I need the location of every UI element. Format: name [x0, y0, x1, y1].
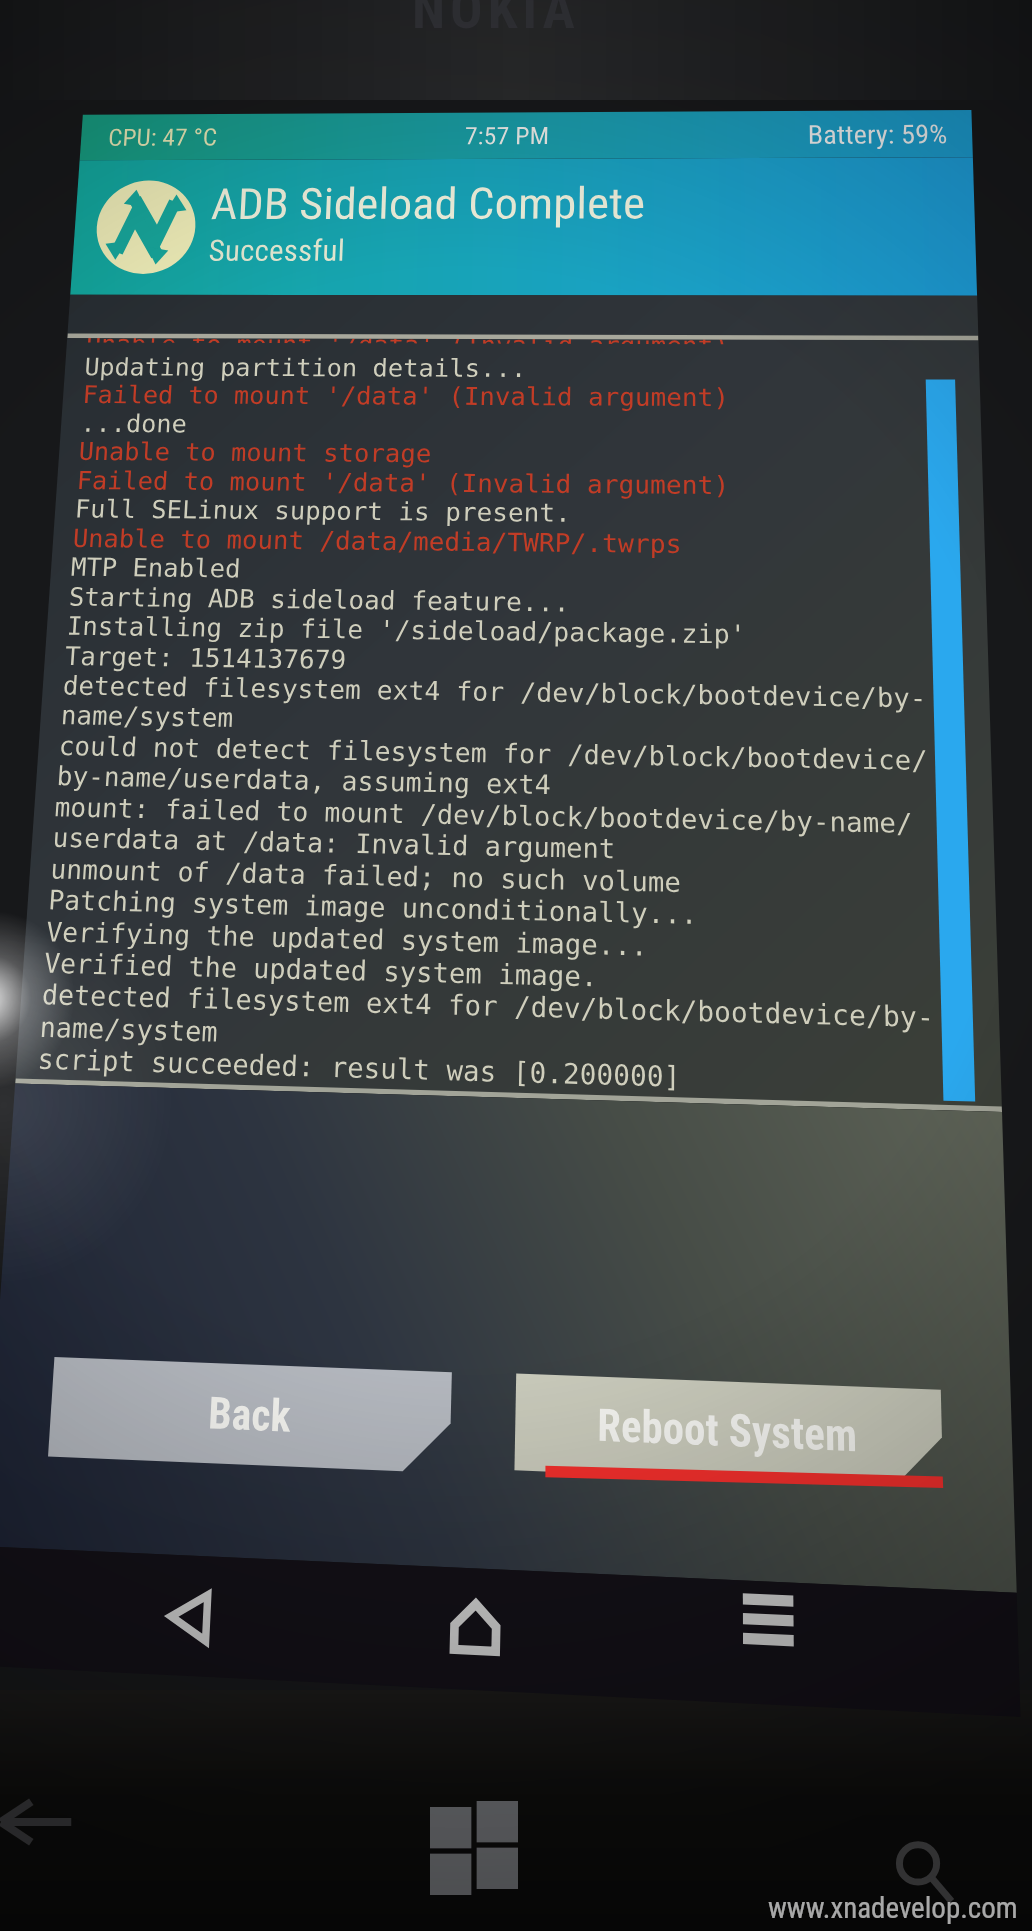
- staticText: Updating partition details...: [84, 353, 527, 382]
- staticText: 7:57 PM: [464, 122, 550, 150]
- staticText: NOKIA: [412, 0, 580, 41]
- staticText: Unable to mount '/data' (Invalid argumen…: [86, 338, 729, 344]
- button[interactable]: Back: [48, 1357, 452, 1473]
- staticText: www.xnadevelop.com: [768, 1891, 1018, 1925]
- staticText: name/system: [60, 700, 234, 733]
- staticText: Successful: [208, 233, 346, 268]
- staticText: Failed to mount '/data' (Invalid argumen…: [82, 381, 729, 412]
- staticText: Full SELinux support is present.: [74, 494, 572, 527]
- staticText: Installing zip file '/sideload/package.z…: [66, 611, 746, 649]
- staticText: Reboot System: [597, 1399, 858, 1463]
- staticText: ADB Sideload Complete: [210, 178, 646, 230]
- staticText: Unable to mount storage: [78, 437, 432, 468]
- staticText: Patching system image unconditionally...: [47, 884, 698, 930]
- staticText: ...done: [80, 409, 188, 438]
- staticText: Verified the updated system image.: [43, 947, 598, 993]
- staticText: Starting ADB sideload feature...: [68, 582, 571, 617]
- staticText: by-name/userdata, assuming ext4: [56, 761, 551, 800]
- staticText: unmount of /data failed; no such volume: [49, 854, 681, 898]
- staticText: detected filesystem ext4 for /dev/block/…: [62, 671, 927, 713]
- staticText: Failed to mount '/data' (Invalid argumen…: [76, 466, 730, 500]
- staticText: Verifying the updated system image...: [45, 916, 648, 962]
- button[interactable]: Recent apps: [743, 1593, 794, 1652]
- staticText: Target: 1514137679: [64, 641, 347, 675]
- staticText: could not detect filesystem for /dev/blo…: [58, 731, 928, 776]
- staticText: detected filesystem ext4 for /dev/block/…: [41, 979, 934, 1033]
- staticText: MTP Enabled: [70, 552, 242, 583]
- staticText: CPU: 47 °C: [107, 123, 218, 152]
- button[interactable]: Reboot System: [514, 1373, 943, 1488]
- button[interactable]: Search: [892, 1843, 954, 1905]
- staticText: Battery: 59%: [807, 119, 948, 150]
- button[interactable]: Back: [168, 1593, 210, 1642]
- staticText: script succeeded: result was [0.200000]: [37, 1043, 680, 1093]
- button[interactable]: Home: [452, 1600, 498, 1655]
- staticText: Back: [207, 1387, 292, 1443]
- staticText: Unable to mount /data/media/TWRP/.twrps: [72, 524, 682, 559]
- button[interactable]: Start: [430, 1801, 518, 1889]
- staticText: mount: failed to mount /dev/block/bootde…: [54, 792, 913, 839]
- staticText: userdata at /data: Invalid argument: [52, 822, 615, 864]
- staticText: name/system: [39, 1011, 219, 1048]
- button[interactable]: Back: [0, 1793, 72, 1851]
